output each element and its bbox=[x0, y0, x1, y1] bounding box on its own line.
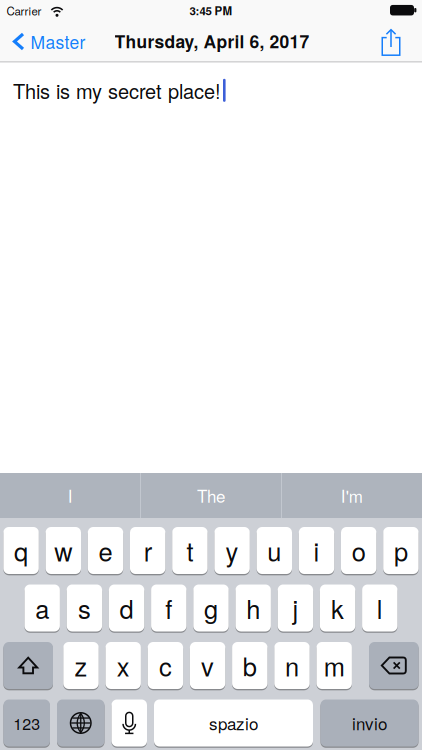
staticText: s bbox=[78, 590, 91, 626]
button[interactable]: y bbox=[214, 527, 250, 574]
button[interactable]: b bbox=[232, 642, 267, 689]
staticText: f bbox=[165, 590, 172, 626]
button[interactable]: t bbox=[172, 527, 208, 574]
button[interactable]: I bbox=[0, 473, 140, 518]
staticText: This is my secret place! bbox=[13, 76, 221, 105]
staticText: w bbox=[54, 532, 72, 569]
button[interactable]: v bbox=[190, 642, 225, 689]
button[interactable]: m bbox=[316, 642, 352, 689]
staticText: d bbox=[120, 590, 134, 626]
staticText: i bbox=[313, 532, 319, 569]
staticText: x bbox=[117, 647, 130, 684]
button[interactable]: w bbox=[46, 527, 81, 574]
staticText: g bbox=[204, 590, 218, 626]
button[interactable]: f bbox=[151, 584, 186, 631]
staticText: h bbox=[246, 590, 260, 626]
staticText: y bbox=[226, 532, 239, 569]
button[interactable]: e bbox=[88, 527, 123, 574]
button[interactable]: k bbox=[320, 584, 355, 631]
button[interactable] bbox=[111, 699, 147, 746]
staticText: j bbox=[292, 590, 298, 626]
staticText: z bbox=[74, 647, 87, 684]
staticText: o bbox=[352, 532, 366, 569]
staticText: Thursday, April 6, 2017 bbox=[114, 28, 309, 54]
staticText: t bbox=[186, 532, 193, 569]
staticText: k bbox=[331, 590, 344, 626]
button[interactable]: invio bbox=[320, 699, 418, 746]
staticText: a bbox=[35, 590, 49, 626]
staticText: m bbox=[324, 647, 345, 684]
staticText: invio bbox=[352, 711, 387, 735]
button[interactable]: x bbox=[105, 642, 141, 689]
button[interactable]: j bbox=[278, 584, 313, 631]
staticText: Master bbox=[30, 29, 85, 54]
staticText: I bbox=[68, 483, 73, 508]
button[interactable] bbox=[3, 642, 53, 689]
button[interactable]: c bbox=[148, 642, 183, 689]
button[interactable]: u bbox=[257, 527, 292, 574]
staticText: n bbox=[285, 647, 299, 684]
button[interactable]: r bbox=[130, 527, 165, 574]
staticText: The bbox=[197, 483, 225, 508]
button[interactable] bbox=[374, 25, 408, 59]
button[interactable]: h bbox=[235, 584, 271, 631]
button[interactable]: g bbox=[193, 584, 229, 631]
button[interactable]: d bbox=[109, 584, 144, 631]
button[interactable]: q bbox=[3, 527, 39, 574]
staticText: 3:45 PM bbox=[189, 2, 232, 19]
button[interactable]: Master bbox=[12, 29, 85, 54]
staticText: spazio bbox=[209, 711, 258, 735]
button[interactable]: i bbox=[299, 527, 334, 574]
staticText: Carrier bbox=[6, 2, 41, 19]
staticText: v bbox=[201, 647, 214, 684]
button[interactable]: spazio bbox=[154, 699, 313, 746]
button[interactable]: l bbox=[362, 584, 397, 631]
button[interactable] bbox=[369, 642, 419, 689]
staticText: u bbox=[267, 532, 281, 569]
staticText: r bbox=[144, 532, 152, 569]
button[interactable]: a bbox=[24, 584, 60, 631]
button[interactable]: p bbox=[383, 527, 419, 574]
staticText: l bbox=[377, 590, 383, 626]
button[interactable]: I'm bbox=[282, 473, 422, 518]
button[interactable]: 123 bbox=[3, 699, 50, 746]
staticText: p bbox=[394, 532, 408, 569]
button[interactable]: s bbox=[67, 584, 102, 631]
button[interactable]: The bbox=[141, 473, 281, 518]
button[interactable]: o bbox=[341, 527, 376, 574]
button[interactable]: n bbox=[274, 642, 310, 689]
staticText: q bbox=[14, 532, 28, 569]
staticText: c bbox=[159, 647, 172, 684]
staticText: e bbox=[98, 532, 112, 569]
staticText: b bbox=[243, 647, 257, 684]
staticText: I'm bbox=[341, 483, 363, 508]
button[interactable] bbox=[57, 699, 104, 746]
button[interactable]: z bbox=[63, 642, 99, 689]
staticText: 123 bbox=[13, 711, 40, 734]
